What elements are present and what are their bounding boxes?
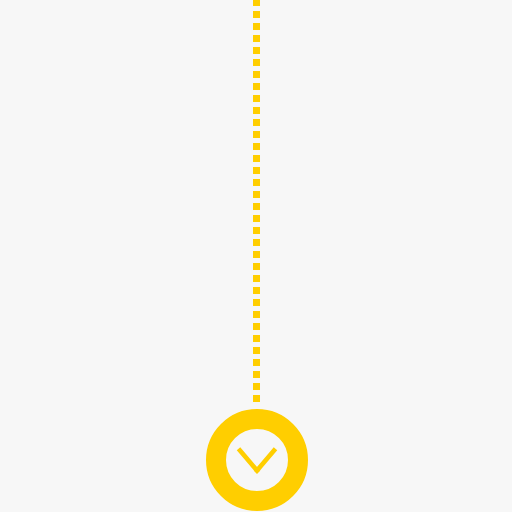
button[interactable]: Scroll down — [206, 409, 308, 511]
